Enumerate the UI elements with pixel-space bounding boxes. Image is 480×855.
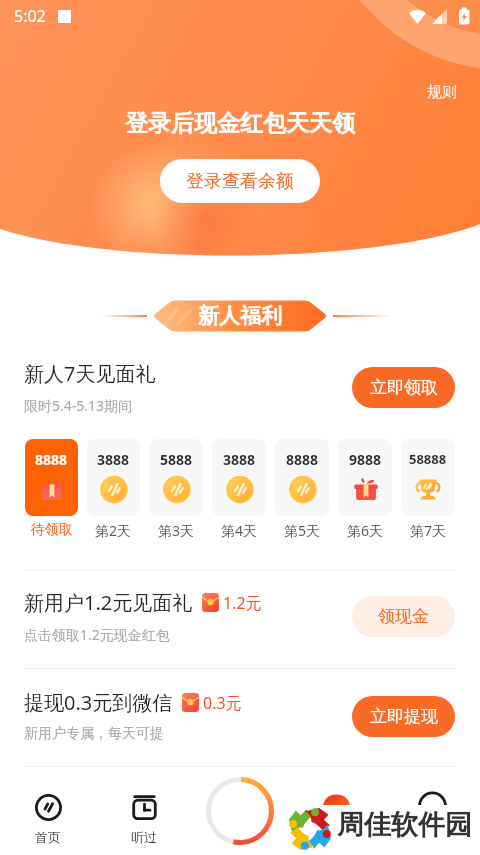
button[interactable]: 听过 [96, 794, 192, 845]
button[interactable]: 8888 [275, 439, 329, 540]
staticText: 登录查看余额 [186, 170, 294, 193]
staticText: 第7天 [410, 521, 447, 540]
staticText: 点击领取1.2元现金红包 [24, 625, 170, 644]
staticText: 3888 [97, 450, 130, 469]
button[interactable]: 9888 [338, 439, 392, 540]
staticText: 1.2元 [223, 592, 262, 614]
staticText: 5888 [160, 450, 193, 469]
staticText: 新用户1.2元见面礼 [24, 589, 193, 616]
button[interactable]: 5888 [149, 439, 203, 540]
button[interactable]: 领现金 [352, 596, 455, 637]
staticText: 8888 [35, 450, 68, 469]
button[interactable]: 8888 [25, 439, 78, 539]
button[interactable]: 福利 [288, 794, 384, 845]
staticText: 9888 [349, 450, 382, 469]
staticText: 3888 [223, 450, 256, 469]
staticText: 第5天 [284, 521, 321, 540]
button[interactable]: 登录查看余额 [160, 159, 320, 203]
staticText: 新人福利 [198, 303, 282, 329]
staticText: 第6天 [347, 521, 384, 540]
staticText: 登录后现金红包天天领 [125, 109, 355, 138]
staticText: 8888 [286, 450, 319, 469]
staticText: 周佳软件园 [337, 808, 472, 842]
staticText: 提现0.3元到微信 [24, 689, 173, 716]
button[interactable]: 首页 [0, 794, 96, 845]
staticText: 5:02 [14, 5, 46, 27]
button[interactable]: 立即提现 [352, 696, 455, 737]
staticText: 第4天 [221, 521, 258, 540]
staticText: 首页 [35, 829, 61, 845]
staticText: 0.3元 [203, 692, 242, 714]
staticText: 限时5.4-5.13期间 [24, 396, 133, 415]
button[interactable]: 3888 [212, 439, 266, 540]
staticText: 待领取 [31, 521, 73, 539]
staticText: 领现金 [378, 606, 429, 627]
button[interactable]: Play [206, 777, 274, 845]
staticText: 听过 [131, 829, 157, 845]
button[interactable]: 我的 [384, 794, 480, 845]
staticText: 新人7天见面礼 [24, 360, 156, 387]
button[interactable]: 3888 [87, 439, 140, 540]
staticText: 福利 [323, 829, 349, 845]
button[interactable]: 规则 [427, 83, 457, 102]
staticText: 新用户专属，每天可提 [24, 725, 164, 743]
button[interactable]: 58888 [401, 439, 455, 540]
staticText: 第3天 [158, 521, 195, 540]
staticText: 第2天 [95, 521, 132, 540]
staticText: 我的 [419, 829, 445, 845]
button[interactable]: 立即领取 [352, 367, 455, 408]
staticText: 58888 [409, 450, 447, 468]
staticText: 立即领取 [370, 377, 438, 398]
staticText: 立即提现 [370, 706, 438, 727]
